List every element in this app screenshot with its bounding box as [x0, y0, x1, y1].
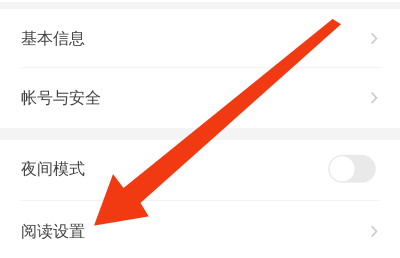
button[interactable]: 帐号与安全 [0, 68, 400, 128]
staticText: 阅读设置 [21, 222, 85, 241]
button[interactable]: 阅读设置 [0, 201, 400, 258]
button[interactable]: 夜间模式 [0, 140, 400, 200]
button[interactable]: 基本信息 [0, 9, 400, 67]
staticText: 帐号与安全 [21, 88, 101, 108]
staticText: 夜间模式 [21, 159, 85, 179]
staticText: 基本信息 [21, 29, 85, 48]
